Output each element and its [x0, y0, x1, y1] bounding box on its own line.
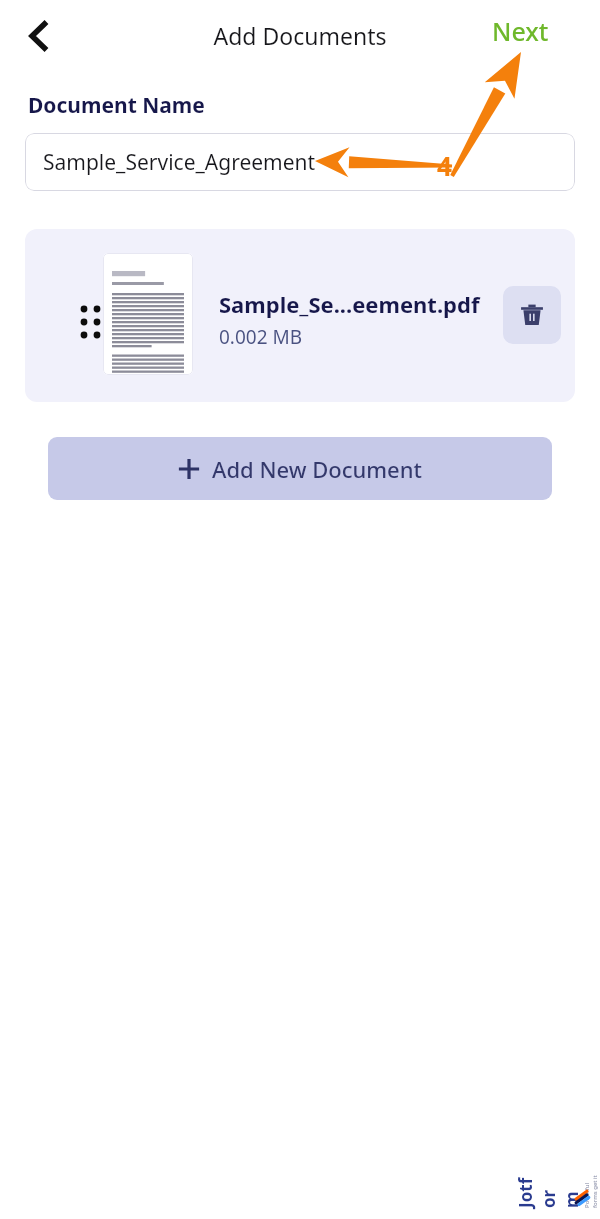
staticText: Add Documents	[0, 20, 600, 51]
staticText: Next	[492, 14, 549, 48]
staticText: Sample_Se...eement.pdf	[219, 289, 480, 319]
button[interactable]: Sample_Se...eement.pdf	[25, 229, 575, 402]
staticText: Powerful forms get it done	[583, 1174, 600, 1208]
button[interactable]: Next	[492, 14, 549, 48]
button[interactable]: Add New Document	[48, 437, 552, 500]
staticText: 4	[437, 148, 452, 183]
button[interactable]: Sample_Service_Agreement	[25, 133, 575, 191]
staticText: Sample_Service_Agreement	[43, 148, 316, 177]
staticText: Add New Document	[212, 454, 422, 484]
button[interactable]: Delete document	[503, 286, 561, 344]
staticText: 0.002 MB	[219, 324, 303, 350]
staticText: Document Name	[28, 91, 205, 120]
button[interactable]: Back	[14, 12, 62, 60]
staticText: Jotform	[514, 1174, 583, 1208]
